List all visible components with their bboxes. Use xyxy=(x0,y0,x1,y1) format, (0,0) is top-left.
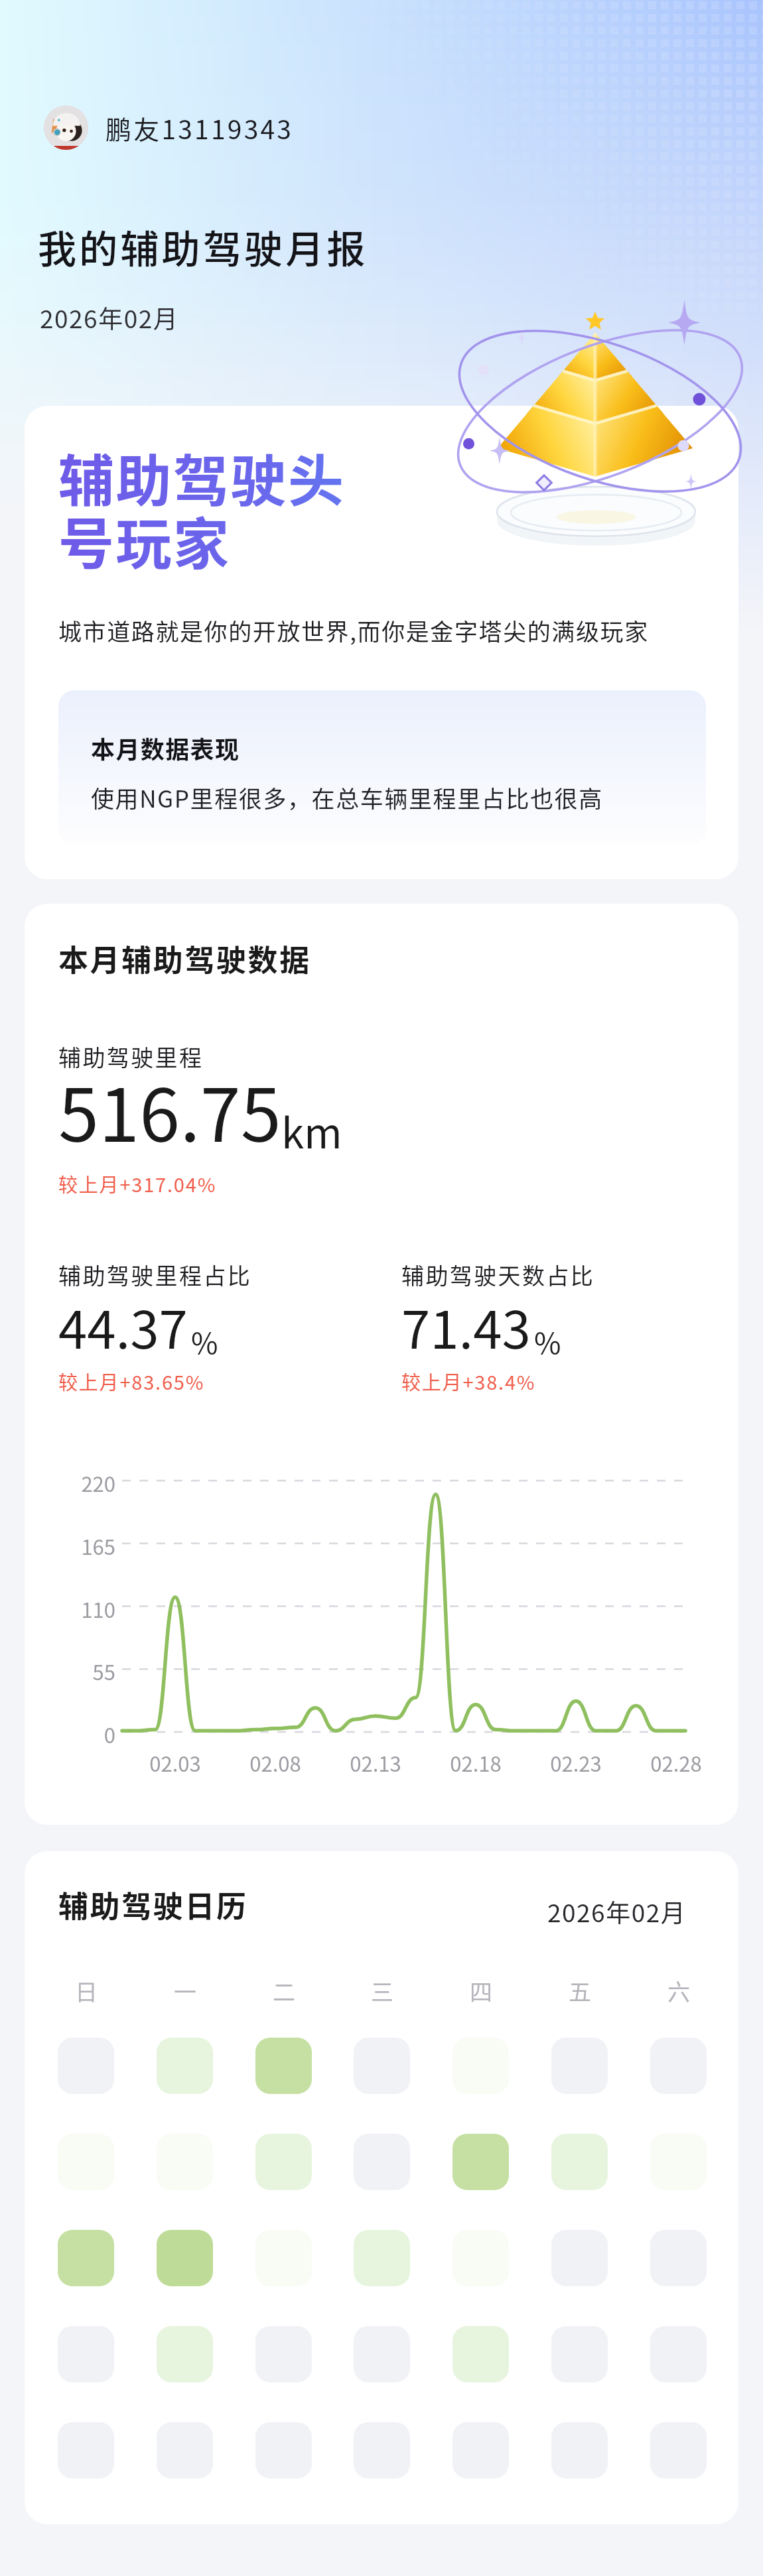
staticText: 五 xyxy=(569,1975,591,2007)
button[interactable]: day xyxy=(452,2134,509,2190)
staticText: 2026年02月 xyxy=(547,1894,687,1930)
staticText: 四 xyxy=(470,1975,492,2007)
button[interactable]: day xyxy=(354,2134,410,2190)
staticText: 一 xyxy=(174,1975,196,2007)
staticText: 2026年02月 xyxy=(40,300,179,336)
staticText: km xyxy=(281,1101,342,1160)
button[interactable]: day xyxy=(354,2038,410,2094)
staticText: 城市道路就是你的开放世界,而你是金字塔尖的满级玩家 xyxy=(58,613,649,647)
staticText: 本月数据表现 xyxy=(91,731,240,765)
button[interactable]: day xyxy=(157,2230,213,2286)
button[interactable]: day xyxy=(157,2422,213,2479)
staticText: 辅助驾驶里程 xyxy=(58,1040,204,1073)
staticText: 516.75 xyxy=(58,1057,281,1162)
button[interactable]: day xyxy=(551,2038,608,2094)
button[interactable]: day xyxy=(551,2134,608,2190)
staticText: 六 xyxy=(667,1975,690,2007)
staticText: 02.23 xyxy=(550,1748,602,1778)
button[interactable]: day xyxy=(650,2422,707,2479)
button[interactable]: day xyxy=(58,2422,114,2479)
staticText: 日 xyxy=(75,1975,98,2007)
button[interactable]: 辅助驾驶日历 xyxy=(25,1851,738,2524)
staticText: 220 xyxy=(81,1468,115,1498)
button[interactable]: day xyxy=(452,2422,509,2479)
staticText: 我的辅助驾驶月报 xyxy=(38,219,368,275)
button[interactable]: 本月辅助驾驶数据 xyxy=(25,904,738,1825)
staticText: 使用NGP里程很多，在总车辆里程里占比也很高 xyxy=(91,780,603,814)
button[interactable]: day xyxy=(452,2326,509,2382)
button[interactable]: day xyxy=(58,2326,114,2382)
button[interactable]: day xyxy=(255,2134,312,2190)
button[interactable]: day xyxy=(255,2038,312,2094)
button[interactable]: day xyxy=(354,2326,410,2382)
button[interactable]: day xyxy=(255,2326,312,2382)
button[interactable]: day xyxy=(58,2038,114,2094)
staticText: 0 xyxy=(104,1719,115,1749)
staticText: 71.43 xyxy=(401,1289,531,1364)
button[interactable]: day xyxy=(650,2326,707,2382)
staticText: 02.13 xyxy=(350,1748,401,1778)
staticText: 辅助驾驶日历 xyxy=(58,1883,248,1926)
staticText: 02.28 xyxy=(650,1748,702,1778)
button[interactable]: day xyxy=(551,2326,608,2382)
button[interactable]: day xyxy=(58,2230,114,2286)
button[interactable]: day xyxy=(354,2422,410,2479)
staticText: 辅助驾驶头 号玩家 xyxy=(58,437,346,580)
staticText: 44.37 xyxy=(58,1289,188,1364)
button[interactable]: day xyxy=(354,2230,410,2286)
staticText: 三 xyxy=(371,1975,393,2007)
staticText: 02.08 xyxy=(249,1748,301,1778)
staticText: 辅助驾驶天数占比 xyxy=(401,1258,595,1291)
staticText: 鹏友13119343 xyxy=(105,109,294,147)
button[interactable]: day xyxy=(255,2422,312,2479)
staticText: 55 xyxy=(92,1656,115,1686)
staticText: 较上月+317.04% xyxy=(58,1170,217,1197)
button[interactable]: 本月数据表现 xyxy=(58,690,706,845)
staticText: % xyxy=(191,1320,218,1363)
staticText: 本月辅助驾驶数据 xyxy=(58,937,311,980)
button[interactable]: day xyxy=(650,2038,707,2094)
button[interactable] xyxy=(25,406,738,879)
button[interactable]: 鹏友13119343 xyxy=(44,105,294,150)
button[interactable]: day xyxy=(157,2038,213,2094)
staticText: 二 xyxy=(273,1975,295,2007)
staticText: 110 xyxy=(81,1594,115,1624)
button[interactable]: day xyxy=(650,2230,707,2286)
staticText: % xyxy=(534,1320,561,1363)
button[interactable]: day xyxy=(157,2326,213,2382)
staticText: 较上月+83.65% xyxy=(58,1367,205,1395)
staticText: 02.03 xyxy=(149,1748,201,1778)
staticText: 辅助驾驶里程占比 xyxy=(58,1258,252,1291)
staticText: 165 xyxy=(81,1531,115,1561)
button[interactable]: day xyxy=(551,2422,608,2479)
button[interactable]: day xyxy=(551,2230,608,2286)
staticText: 02.18 xyxy=(450,1748,502,1778)
staticText: 较上月+38.4% xyxy=(401,1367,536,1395)
